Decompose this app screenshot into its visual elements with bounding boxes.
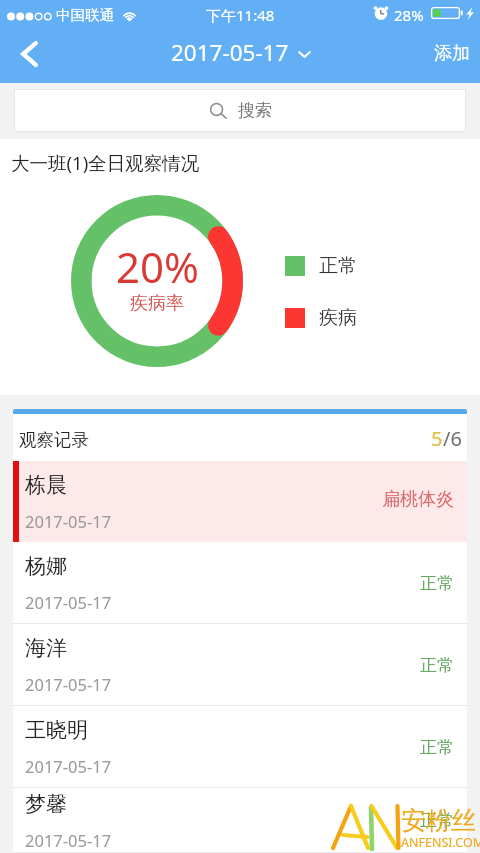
staticText: 2017-05-17: [25, 591, 112, 613]
button[interactable]: 王晓明: [13, 706, 467, 788]
staticText: 扁桃体炎: [382, 488, 454, 511]
button[interactable]: Back: [3, 33, 55, 82]
staticText: 王晓明: [25, 717, 88, 743]
staticText: ANFENSI.COM: [401, 834, 480, 851]
button[interactable]: 搜索: [14, 89, 466, 132]
staticText: 20%: [116, 238, 199, 295]
staticText: 栋晨: [25, 472, 67, 498]
staticText: 2017-05-17: [25, 755, 112, 777]
staticText: 添加: [434, 42, 470, 65]
staticText: 安粉丝: [401, 805, 476, 836]
staticText: 2017-05-17: [25, 829, 112, 851]
staticText: 28%: [394, 5, 424, 25]
staticText: 梦馨: [25, 791, 67, 817]
staticText: /6: [443, 425, 462, 452]
button[interactable]: 杨娜: [13, 542, 467, 624]
button[interactable]: 梦馨: [13, 788, 467, 853]
staticText: 疾病: [319, 306, 357, 330]
staticText: 搜索: [238, 100, 272, 121]
staticText: 正常: [420, 810, 454, 831]
button[interactable]: 栋晨: [13, 461, 467, 542]
button[interactable]: 海洋: [13, 624, 467, 706]
staticText: 杨娜: [25, 553, 67, 579]
staticText: 2017-05-17: [171, 37, 289, 68]
staticText: 下午11:48: [206, 5, 275, 25]
button[interactable]: 2017-05-17: [171, 37, 311, 68]
staticText: 中国联通: [56, 6, 114, 24]
staticText: 正常: [319, 254, 357, 278]
staticText: 观察记录: [19, 429, 89, 451]
staticText: 正常: [420, 737, 454, 758]
staticText: 大一班(1)全日观察情况: [11, 150, 200, 175]
staticText: 5: [431, 425, 443, 452]
staticText: 正常: [420, 655, 454, 676]
button[interactable]: 添加: [420, 33, 480, 82]
staticText: 海洋: [25, 635, 67, 661]
staticText: 正常: [420, 573, 454, 594]
staticText: 2017-05-17: [25, 673, 112, 695]
staticText: 2017-05-17: [25, 510, 112, 532]
staticText: 疾病率: [130, 292, 184, 315]
